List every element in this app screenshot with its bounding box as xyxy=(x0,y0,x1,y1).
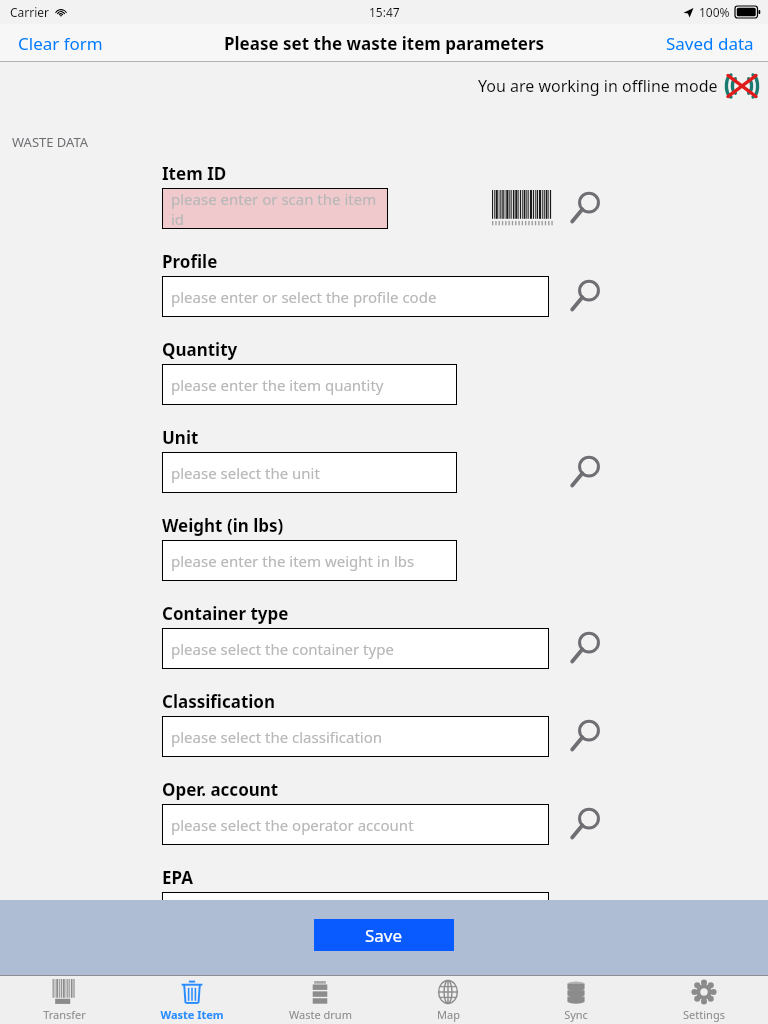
button[interactable]: Search Container type xyxy=(568,630,603,665)
button[interactable]: Scan barcode xyxy=(492,190,552,226)
staticText: Weight (in lbs) xyxy=(162,514,284,537)
staticText: Transfer xyxy=(43,1007,86,1022)
button[interactable]: please select the unit xyxy=(162,452,457,493)
staticText: please select the unit xyxy=(171,463,320,483)
staticText: please select the container type xyxy=(171,639,394,659)
button[interactable]: Sync xyxy=(512,976,640,1024)
button[interactable]: Saved data xyxy=(652,26,768,61)
button[interactable]: Clear form xyxy=(0,26,121,61)
button[interactable]: Waste Item xyxy=(128,976,256,1024)
staticText: please select the operator account xyxy=(171,815,414,835)
staticText: please enter the item weight in lbs xyxy=(171,551,415,571)
staticText: EPA xyxy=(162,866,193,889)
staticText: Saved data xyxy=(666,32,754,55)
button[interactable]: please enter or select the profile code xyxy=(162,276,549,317)
staticText: Settings xyxy=(683,1007,725,1022)
other: Offline mode xyxy=(728,72,756,100)
staticText: Classification xyxy=(162,690,276,713)
button[interactable]: Save xyxy=(314,919,454,951)
button[interactable]: Search Profile xyxy=(568,278,603,313)
staticText: please enter or select the profile code xyxy=(171,287,437,307)
staticText: 100% xyxy=(699,4,730,20)
button[interactable]: please enter the item weight in lbs xyxy=(162,540,457,581)
staticText: Map xyxy=(437,1007,460,1022)
staticText: Unit xyxy=(162,426,199,449)
staticText: Waste drum xyxy=(289,1007,352,1022)
staticText: Save xyxy=(365,924,403,947)
button[interactable]: Map xyxy=(384,976,512,1024)
button[interactable]: please select the operator account xyxy=(162,804,549,845)
button[interactable]: Search Classification xyxy=(568,718,603,753)
staticText: Please set the waste item parameters xyxy=(224,32,545,55)
staticText: WASTE DATA xyxy=(12,133,89,151)
button[interactable]: Search Oper. account xyxy=(568,806,603,841)
button[interactable]: Search Item ID xyxy=(568,190,603,225)
button[interactable]: please select the container type xyxy=(162,628,549,669)
staticText: please enter the item quantity xyxy=(171,375,384,395)
staticText: Waste Item xyxy=(160,1007,224,1022)
staticText: please enter or scan the item id xyxy=(171,189,388,229)
staticText: Item ID xyxy=(162,162,227,185)
staticText: 15:47 xyxy=(369,4,400,20)
staticText: please select the classification xyxy=(171,727,383,747)
staticText: Carrier xyxy=(10,4,50,20)
button[interactable]: please enter the item quantity xyxy=(162,364,457,405)
staticText: You are working in offline mode xyxy=(478,75,718,97)
staticText: Oper. account xyxy=(162,778,279,801)
button[interactable]: Search Unit xyxy=(568,454,603,489)
button[interactable]: Settings xyxy=(640,976,768,1024)
staticText: Sync xyxy=(564,1007,588,1022)
button[interactable]: Waste drum xyxy=(256,976,384,1024)
staticText: Clear form xyxy=(18,32,103,55)
button[interactable] xyxy=(162,892,549,932)
staticText: Profile xyxy=(162,250,218,273)
button[interactable]: Transfer xyxy=(0,976,128,1024)
button[interactable]: please enter or scan the item id xyxy=(162,188,388,229)
staticText: Container type xyxy=(162,602,289,625)
staticText: Quantity xyxy=(162,338,238,361)
button[interactable]: please select the classification xyxy=(162,716,549,757)
